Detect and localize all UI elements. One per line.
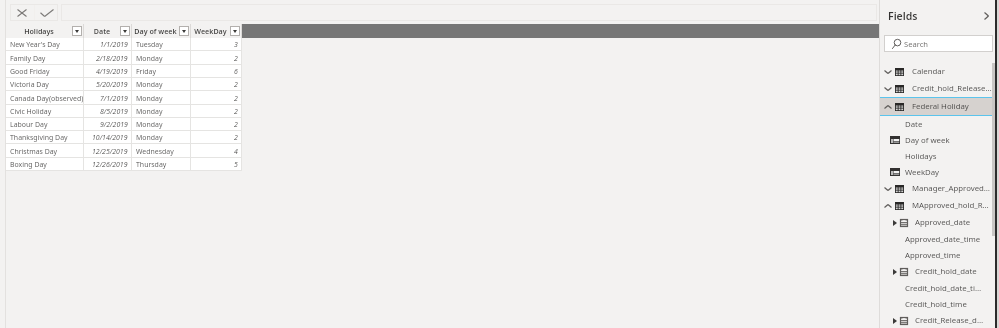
staticText: 6: [234, 67, 238, 76]
staticText: 12/26/2019: [92, 160, 128, 169]
staticText: Credit_hold_Release…: [912, 83, 992, 94]
staticText: 10/14/2019: [92, 133, 128, 142]
staticText: New Year's Day: [10, 40, 60, 49]
button[interactable]: Day of week: [880, 132, 995, 148]
staticText: 7/1/2019: [100, 94, 128, 103]
button[interactable]: Approved_time: [880, 247, 995, 263]
staticText: 8/5/2019: [100, 107, 128, 116]
staticText: Fields: [888, 9, 918, 23]
button[interactable]: Credit_hold_time: [880, 296, 995, 312]
staticText: Date: [905, 119, 923, 130]
button[interactable]: MApproved_hold_R…: [880, 197, 995, 214]
button[interactable]: Calendar: [880, 63, 995, 80]
staticText: Credit_Release_d…: [915, 315, 984, 326]
staticText: Holidays: [905, 151, 937, 162]
button[interactable]: Approved_date: [880, 214, 995, 231]
staticText: 1/1/2019: [100, 40, 128, 49]
button[interactable]: Date: [880, 116, 995, 132]
staticText: Monday: [136, 54, 163, 63]
staticText: Date: [85, 26, 119, 36]
button[interactable]: WeekDay: [191, 24, 242, 38]
staticText: Good Friday: [10, 67, 50, 76]
staticText: Credit_hold_date: [915, 266, 977, 277]
staticText: Monday: [136, 107, 163, 116]
button[interactable]: Manager_Approved…: [880, 180, 995, 197]
staticText: WeekDay: [905, 167, 940, 178]
staticText: Monday: [136, 120, 163, 129]
button[interactable]: [61, 4, 877, 21]
staticText: 2: [234, 54, 238, 63]
button[interactable]: Cancel: [10, 4, 34, 21]
staticText: Approved_date_time: [905, 234, 981, 245]
staticText: Labour Day: [10, 120, 48, 129]
button[interactable]: Apply: [35, 4, 58, 21]
button[interactable]: Federal Holiday: [880, 97, 995, 116]
staticText: WeekDay: [192, 26, 229, 36]
staticText: 2/18/2019: [96, 54, 128, 63]
button[interactable]: Day of week: [132, 24, 191, 38]
staticText: Victoria Day: [10, 80, 49, 89]
staticText: Boxing Day: [10, 160, 47, 169]
button[interactable]: Credit_hold_date: [880, 263, 995, 280]
staticText: Friday: [136, 67, 156, 76]
staticText: Wednesday: [136, 147, 174, 156]
staticText: 2: [234, 133, 238, 142]
staticText: Federal Holiday: [912, 101, 969, 112]
button[interactable]: Collapse fields pane: [979, 9, 993, 23]
staticText: 12/25/2019: [92, 147, 128, 156]
staticText: Calendar: [912, 66, 945, 77]
staticText: Monday: [136, 133, 163, 142]
staticText: Thanksgiving Day: [10, 133, 68, 142]
staticText: Credit_hold_time: [905, 299, 967, 310]
staticText: Family Day: [10, 54, 46, 63]
staticText: Tuesday: [136, 40, 163, 49]
button[interactable]: Approved_date_time: [880, 231, 995, 247]
staticText: MApproved_hold_R…: [912, 200, 989, 211]
staticText: Approved_time: [905, 250, 961, 261]
staticText: Approved_date: [915, 217, 971, 228]
staticText: 2: [234, 94, 238, 103]
staticText: Monday: [136, 94, 163, 103]
staticText: Thursday: [136, 160, 167, 169]
staticText: Day of week: [905, 135, 950, 146]
button[interactable]: WeekDay: [880, 164, 995, 180]
staticText: 3: [234, 40, 238, 49]
staticText: Holidays: [7, 26, 71, 36]
staticText: Manager_Approved…: [912, 183, 991, 194]
button[interactable]: Search: [884, 35, 993, 52]
staticText: Monday: [136, 80, 163, 89]
staticText: Christmas Day: [10, 147, 58, 156]
staticText: 2: [234, 120, 238, 129]
button[interactable]: Date: [84, 24, 132, 38]
staticText: Search: [904, 39, 929, 49]
staticText: 5/20/2019: [96, 80, 128, 89]
staticText: 4: [234, 147, 238, 156]
staticText: Civic Holiday: [10, 107, 52, 116]
staticText: 2: [234, 107, 238, 116]
staticText: 9/2/2019: [100, 120, 128, 129]
staticText: Canada Day(observed): [10, 94, 84, 103]
staticText: Credit_hold_date_ti…: [905, 283, 982, 294]
button[interactable]: Holidays: [6, 24, 84, 38]
button[interactable]: Credit_Release_d…: [880, 312, 995, 328]
staticText: 5: [234, 160, 238, 169]
staticText: 2: [234, 80, 238, 89]
button[interactable]: Holidays: [880, 148, 995, 164]
button[interactable]: Credit_hold_date_ti…: [880, 280, 995, 296]
button[interactable]: Credit_hold_Release…: [880, 80, 995, 97]
staticText: Day of week: [133, 26, 178, 36]
staticText: 4/19/2019: [96, 67, 128, 76]
